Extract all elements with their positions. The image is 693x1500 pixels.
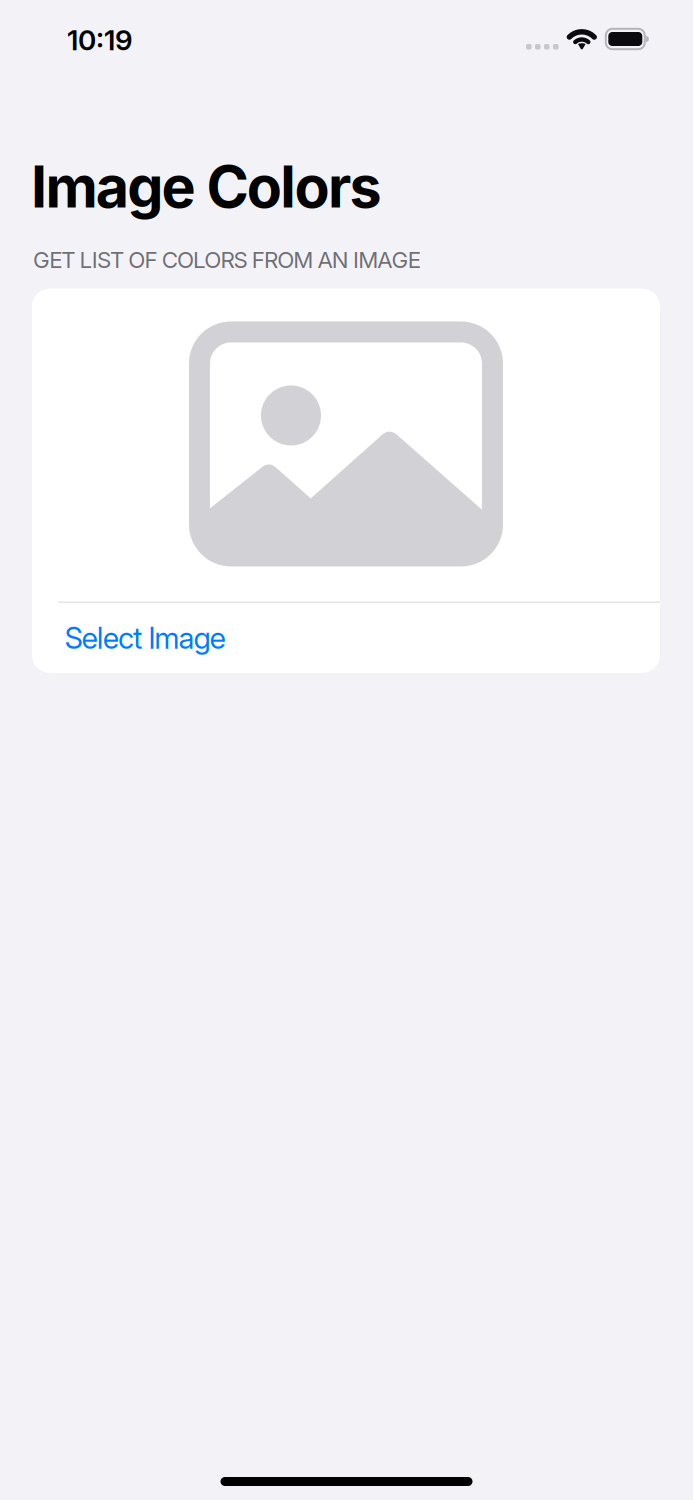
staticText: Select Image xyxy=(64,620,226,656)
staticText: GET LIST OF COLORS FROM AN IMAGE xyxy=(33,246,421,273)
button[interactable]: Select Image xyxy=(32,603,660,673)
staticText: Image Colors xyxy=(31,152,381,221)
staticText: 10:19 xyxy=(67,23,133,57)
